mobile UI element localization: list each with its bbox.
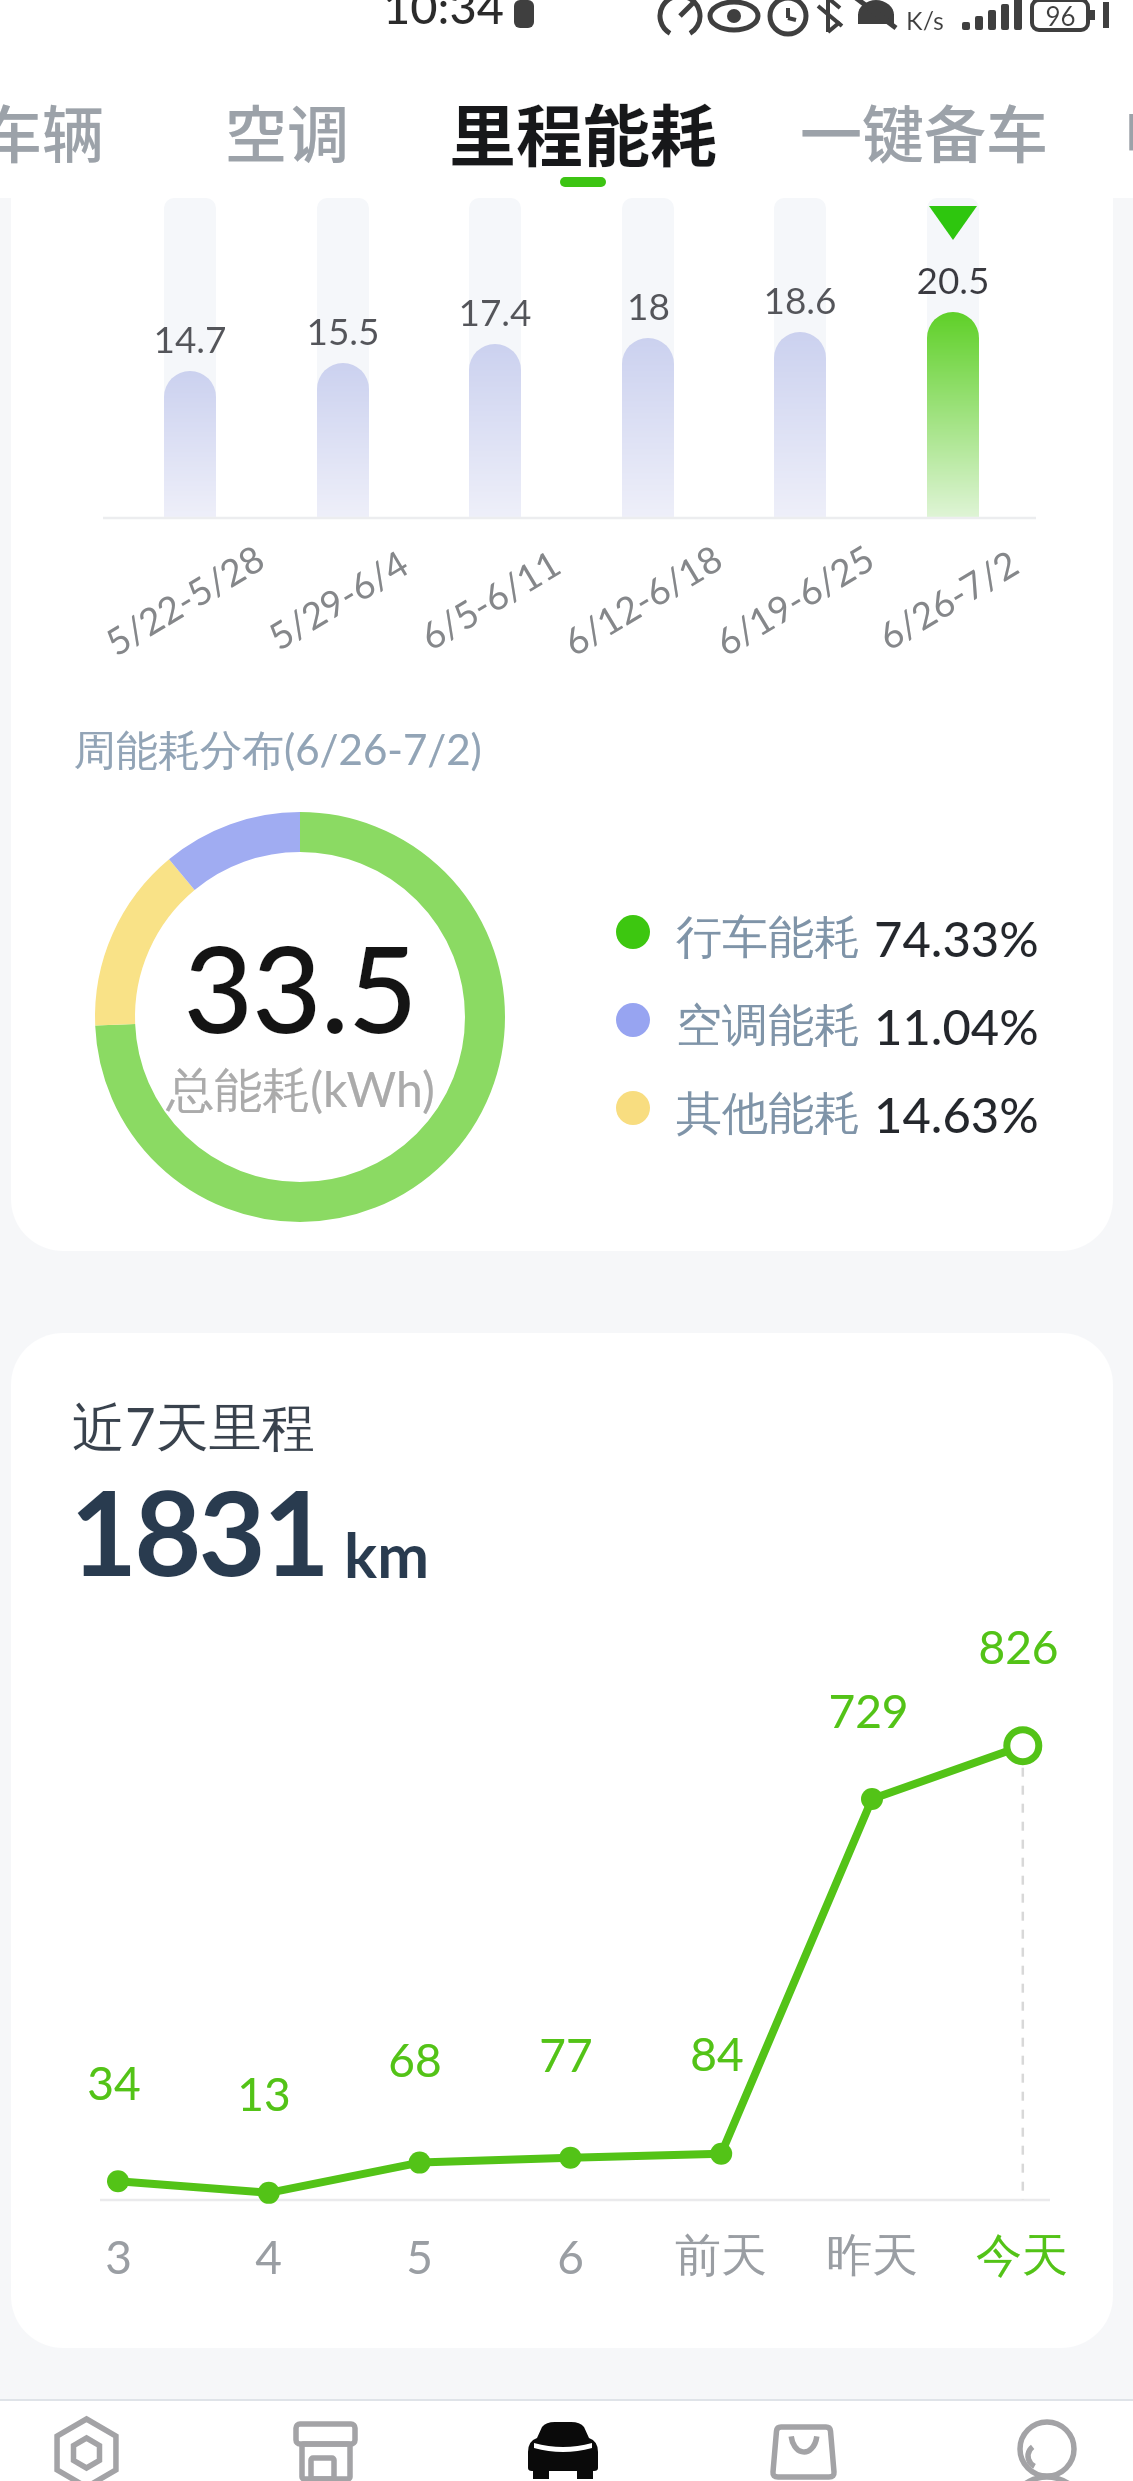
staticText: 4 <box>255 2229 282 2284</box>
staticText: 其他能耗 <box>676 1085 860 1143</box>
staticText: 前天 <box>675 2227 767 2285</box>
staticText: 车辆 <box>0 86 105 176</box>
staticText: 10:34 <box>383 0 504 34</box>
staticText: 68 <box>388 2032 442 2087</box>
staticText: 826 <box>978 1619 1059 1674</box>
staticText: 13 <box>237 2066 291 2121</box>
staticText: 5/29-6/4 <box>260 540 415 657</box>
staticText: 里程能耗 <box>449 83 717 180</box>
staticText: 空调 <box>225 86 350 176</box>
staticText: 18 <box>627 283 670 327</box>
staticText: 15.5 <box>306 308 380 352</box>
staticText: 行车能耗 <box>676 909 860 967</box>
staticText: 17.4 <box>458 289 532 333</box>
staticText: 近7天里程 <box>72 1394 315 1462</box>
staticText: 6/5-6/11 <box>412 540 567 657</box>
staticText: 5/22-5/28 <box>97 535 271 663</box>
staticText: 96 <box>1045 0 1076 31</box>
staticText: km <box>344 1517 430 1591</box>
staticText: 周能耗分布(6/26-7/2) <box>74 724 482 778</box>
staticText: 14.7 <box>153 316 227 360</box>
staticText: 77 <box>539 2027 593 2082</box>
staticText: 18.6 <box>763 277 837 321</box>
staticText: 总能耗(kWh) <box>166 1060 435 1122</box>
staticText: 一键备车 <box>800 86 1049 176</box>
staticText: 33.5 <box>183 915 417 1059</box>
staticText: 6/26-7/2 <box>870 540 1025 657</box>
staticText: 昨天 <box>826 2227 918 2285</box>
staticText: 729 <box>828 1683 909 1738</box>
staticText: 74.33% <box>874 909 1039 968</box>
staticText: 5 <box>406 2229 433 2284</box>
staticText: 84 <box>690 2026 744 2081</box>
staticText: 20.5 <box>916 257 990 301</box>
staticText: K/s <box>906 5 944 35</box>
staticText: 6/19-6/25 <box>707 535 881 663</box>
staticText: 3 <box>105 2229 132 2284</box>
staticText: 电池 <box>1122 86 1133 176</box>
staticText: 11.04% <box>874 997 1039 1056</box>
staticText: 34 <box>87 2055 141 2110</box>
staticText: 今天 <box>976 2227 1068 2285</box>
staticText: 14.63% <box>874 1085 1039 1144</box>
staticText: 6 <box>557 2229 584 2284</box>
staticText: 6/12-6/18 <box>555 535 729 663</box>
staticText: 空调能耗 <box>676 997 860 1055</box>
staticText: 1831 <box>70 1462 328 1601</box>
